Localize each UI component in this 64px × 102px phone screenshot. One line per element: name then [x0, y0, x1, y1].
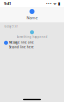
staticText: 9:41: [4, 1, 11, 6]
staticText: ••• ᯤ ▮: [46, 1, 60, 6]
staticText: Second line here: [9, 45, 34, 49]
staticText: Message line one: [9, 41, 34, 44]
staticText: Today 9:41: [4, 25, 19, 28]
staticText: Name: [26, 15, 37, 20]
staticText: Something happened: [16, 35, 47, 39]
